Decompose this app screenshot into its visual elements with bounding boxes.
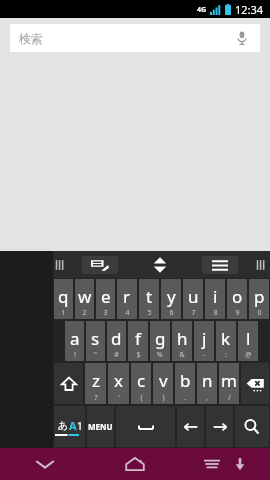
staticText: h [177, 327, 188, 350]
staticText: 1 [61, 308, 66, 318]
staticText: 7 [191, 308, 196, 318]
staticText: y [167, 285, 176, 308]
staticText: / [228, 393, 231, 403]
button[interactable]: Home [90, 448, 180, 480]
staticText: - [203, 350, 206, 360]
staticText: a [70, 327, 80, 350]
staticText: ' [118, 393, 120, 403]
button[interactable]: n [197, 363, 217, 404]
button[interactable]: MENU [87, 406, 114, 447]
staticText: o [232, 285, 243, 308]
button[interactable]: l [238, 321, 258, 361]
button[interactable]: q [54, 279, 73, 319]
button[interactable]: Keyboard settings [202, 256, 238, 274]
button[interactable]: Resize keyboard [149, 254, 171, 276]
button[interactable]: s [86, 321, 105, 361]
staticText: i [213, 285, 218, 308]
staticText: f [135, 327, 141, 350]
staticText: # [114, 350, 119, 360]
staticText: $ [136, 350, 141, 360]
button[interactable]: c [131, 363, 151, 404]
staticText: 2 [82, 308, 87, 318]
staticText: ! [74, 350, 76, 360]
staticText: 12:34 [235, 2, 264, 17]
staticText: r [123, 285, 131, 308]
button[interactable]: j [194, 321, 214, 361]
button[interactable]: x [108, 363, 129, 404]
button[interactable]: a [65, 321, 84, 361]
staticText: x [114, 369, 123, 392]
button[interactable]: i [205, 279, 225, 319]
staticText: e [101, 285, 111, 308]
button[interactable]: Download [230, 454, 250, 474]
button[interactable]: r [117, 279, 137, 319]
staticText: p [254, 285, 265, 308]
button[interactable]: p [249, 279, 269, 319]
button[interactable]: w [75, 279, 94, 319]
staticText: 4 [125, 308, 130, 318]
button[interactable]: g [150, 321, 170, 361]
button[interactable]: u [183, 279, 203, 319]
button[interactable]: h [172, 321, 192, 361]
button[interactable]: Handwriting input [82, 256, 118, 274]
staticText: l [246, 327, 251, 350]
button[interactable]: Space [116, 406, 175, 447]
staticText: ( [140, 393, 143, 403]
button[interactable]: 検索 [10, 24, 260, 52]
button[interactable]: Voice search [233, 29, 251, 47]
staticText: 4G [197, 5, 207, 15]
staticText: MENU [88, 421, 113, 432]
staticText: z [92, 369, 100, 392]
button[interactable]: Move right [206, 406, 233, 447]
staticText: d [111, 327, 122, 350]
staticText: ? [94, 393, 98, 403]
staticText: . [184, 393, 186, 403]
staticText: w [78, 285, 92, 308]
staticText: @ [245, 350, 252, 360]
button[interactable]: k [216, 321, 236, 361]
button[interactable]: y [161, 279, 181, 319]
staticText: 1 [77, 419, 83, 433]
button[interactable]: Search [235, 406, 269, 447]
staticText: , [206, 393, 208, 403]
staticText: 8 [213, 308, 218, 318]
button[interactable]: z [85, 363, 106, 404]
staticText: 5 [147, 308, 152, 318]
staticText: ) [162, 393, 165, 403]
staticText: 0 [257, 308, 262, 318]
button[interactable]: v [153, 363, 173, 404]
staticText: u [188, 285, 199, 308]
button[interactable]: o [227, 279, 247, 319]
button[interactable]: Menu [200, 452, 224, 476]
staticText: t [146, 285, 153, 308]
button[interactable]: m [219, 363, 239, 404]
button[interactable]: t [139, 279, 159, 319]
button[interactable]: あ [54, 406, 85, 447]
staticText: あ [58, 419, 69, 432]
staticText: k [221, 327, 231, 350]
staticText: 9 [235, 308, 240, 318]
staticText: " [94, 350, 97, 360]
staticText: g [155, 327, 166, 350]
staticText: n [202, 369, 213, 392]
staticText: : [225, 350, 227, 360]
staticText: 検索 [19, 31, 43, 46]
staticText: j [202, 327, 207, 350]
button[interactable]: e [96, 279, 115, 319]
staticText: v [159, 369, 168, 392]
button[interactable]: b [175, 363, 195, 404]
button[interactable]: Backspace [241, 363, 269, 404]
staticText: b [180, 369, 191, 392]
button[interactable]: Shift [54, 363, 83, 404]
staticText: % [157, 350, 163, 360]
staticText: & [179, 350, 185, 360]
staticText: A [69, 418, 77, 433]
button[interactable]: d [107, 321, 126, 361]
staticText: 3 [103, 308, 108, 318]
button[interactable]: Move left [177, 406, 204, 447]
staticText: c [137, 369, 146, 392]
button[interactable]: Back [0, 448, 90, 480]
button[interactable]: f [128, 321, 148, 361]
staticText: s [91, 327, 100, 350]
staticText: m [221, 369, 237, 392]
